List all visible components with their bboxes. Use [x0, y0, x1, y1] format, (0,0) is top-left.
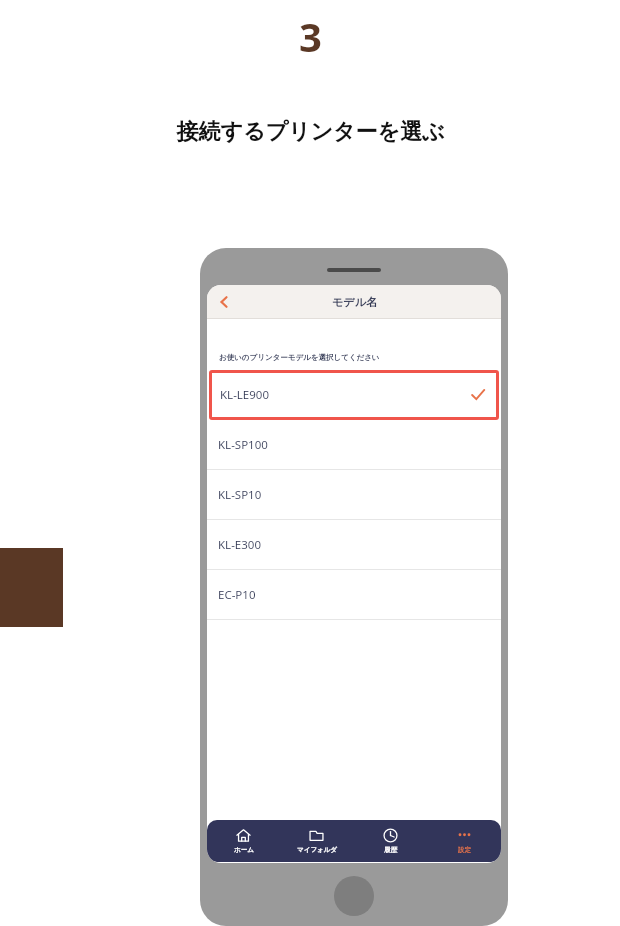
button[interactable]: Home button: [334, 876, 374, 916]
staticText: KL-E300: [218, 537, 261, 553]
button[interactable]: Back: [207, 285, 241, 318]
staticText: KL-LE900: [220, 387, 270, 403]
button[interactable]: KL-LE900: [209, 370, 499, 420]
button[interactable]: KL-SP100: [207, 420, 501, 470]
staticText: お使いのプリンターモデルを選択してください: [219, 353, 380, 362]
staticText: モデル名: [332, 295, 377, 309]
staticText: 履歴: [384, 846, 397, 854]
button[interactable]: 履歴: [353, 820, 427, 862]
staticText: EC-P10: [218, 587, 256, 603]
button[interactable]: EC-P10: [207, 570, 501, 620]
button[interactable]: 設定: [427, 820, 501, 862]
staticText: 接続するプリンターを選ぶ: [176, 118, 445, 146]
staticText: 設定: [458, 846, 471, 854]
button[interactable]: マイフォルダ: [280, 820, 353, 862]
button[interactable]: ホーム: [207, 820, 280, 862]
staticText: KL-SP100: [218, 437, 268, 453]
button[interactable]: KL-E300: [207, 520, 501, 570]
staticText: 3: [299, 9, 322, 63]
button[interactable]: KL-SP10: [207, 470, 501, 520]
staticText: KL-SP10: [218, 487, 262, 503]
staticText: マイフォルダ: [297, 846, 337, 854]
staticText: ホーム: [234, 846, 254, 854]
